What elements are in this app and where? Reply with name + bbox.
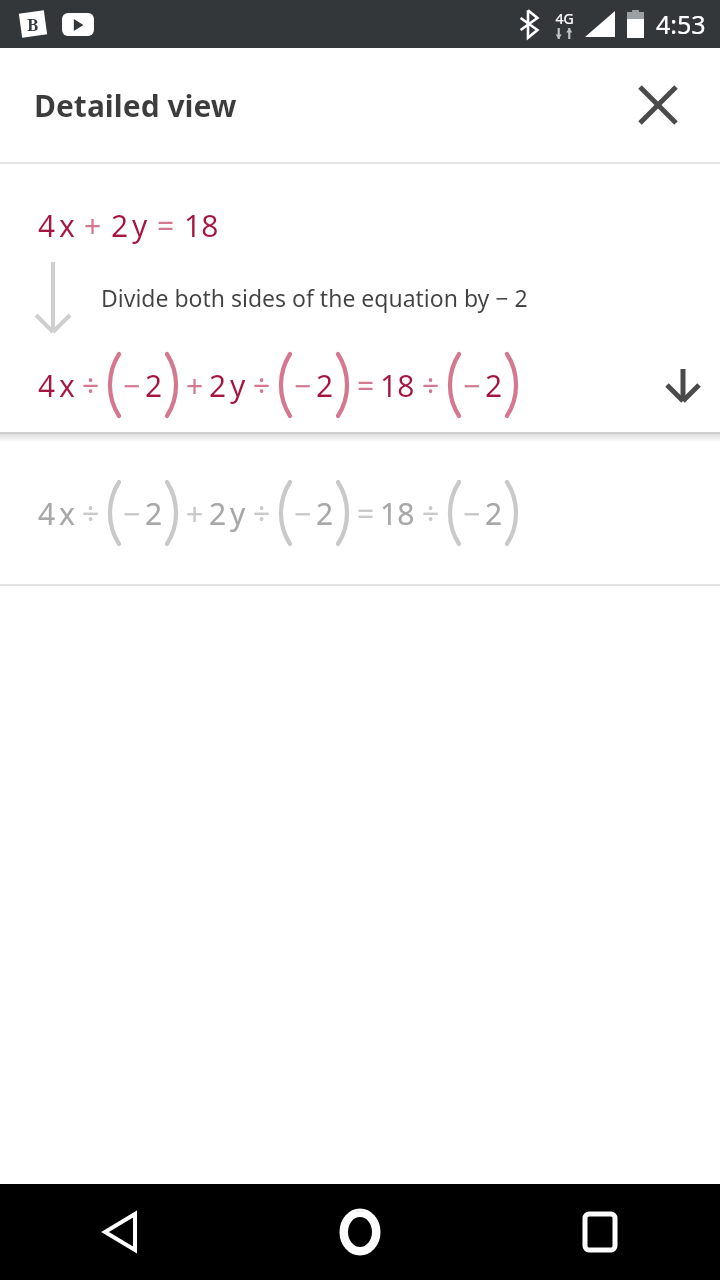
staticText: y <box>132 205 148 246</box>
staticText: 2 <box>485 365 503 406</box>
staticText: ÷ <box>82 493 100 534</box>
staticText: 2 <box>209 493 227 534</box>
staticText: 2 <box>111 205 129 246</box>
staticText: y <box>230 365 246 406</box>
staticText: − <box>123 365 141 406</box>
button[interactable]: 4 <box>0 202 720 248</box>
staticText: 4 <box>38 205 56 246</box>
staticText: − <box>294 365 312 406</box>
staticText: = <box>157 205 175 246</box>
staticText: 4:53 <box>656 7 706 41</box>
staticText: ÷ <box>422 493 440 534</box>
staticText: 4 <box>38 493 56 534</box>
staticText: + <box>84 205 102 246</box>
button[interactable]: 4 <box>0 442 720 584</box>
staticText: B <box>27 13 39 36</box>
staticText: 2 <box>316 493 334 534</box>
staticText: ÷ <box>253 493 271 534</box>
staticText: 18 <box>380 365 415 406</box>
button[interactable]: Expand step <box>646 348 720 422</box>
staticText: 2 <box>485 493 503 534</box>
staticText: + <box>186 365 204 406</box>
staticText: x <box>59 365 75 406</box>
staticText: + <box>186 493 204 534</box>
staticText: 18 <box>184 205 219 246</box>
staticText: ÷ <box>253 365 271 406</box>
staticText: x <box>59 493 75 534</box>
button[interactable]: Home <box>240 1184 480 1280</box>
button[interactable]: 4 <box>0 348 720 422</box>
staticText: − <box>463 493 481 534</box>
staticText: 2 <box>145 365 163 406</box>
staticText: 4G <box>555 9 574 28</box>
staticText: − <box>123 493 141 534</box>
staticText: Detailed view <box>34 85 237 126</box>
button[interactable]: Close <box>622 69 694 141</box>
staticText: 2 <box>316 365 334 406</box>
staticText: y <box>230 493 246 534</box>
staticText: ÷ <box>422 365 440 406</box>
staticText: = <box>357 365 375 406</box>
staticText: x <box>59 205 75 246</box>
staticText: Divide both sides of the equation by − 2 <box>101 282 528 313</box>
button[interactable]: Recent apps <box>480 1184 720 1280</box>
staticText: 18 <box>380 493 415 534</box>
staticText: − <box>294 493 312 534</box>
staticText: ÷ <box>82 365 100 406</box>
staticText: − <box>463 365 481 406</box>
button[interactable]: Back <box>0 1184 240 1280</box>
staticText: = <box>357 493 375 534</box>
staticText: 2 <box>145 493 163 534</box>
staticText: 4 <box>38 365 56 406</box>
staticText: 2 <box>209 365 227 406</box>
